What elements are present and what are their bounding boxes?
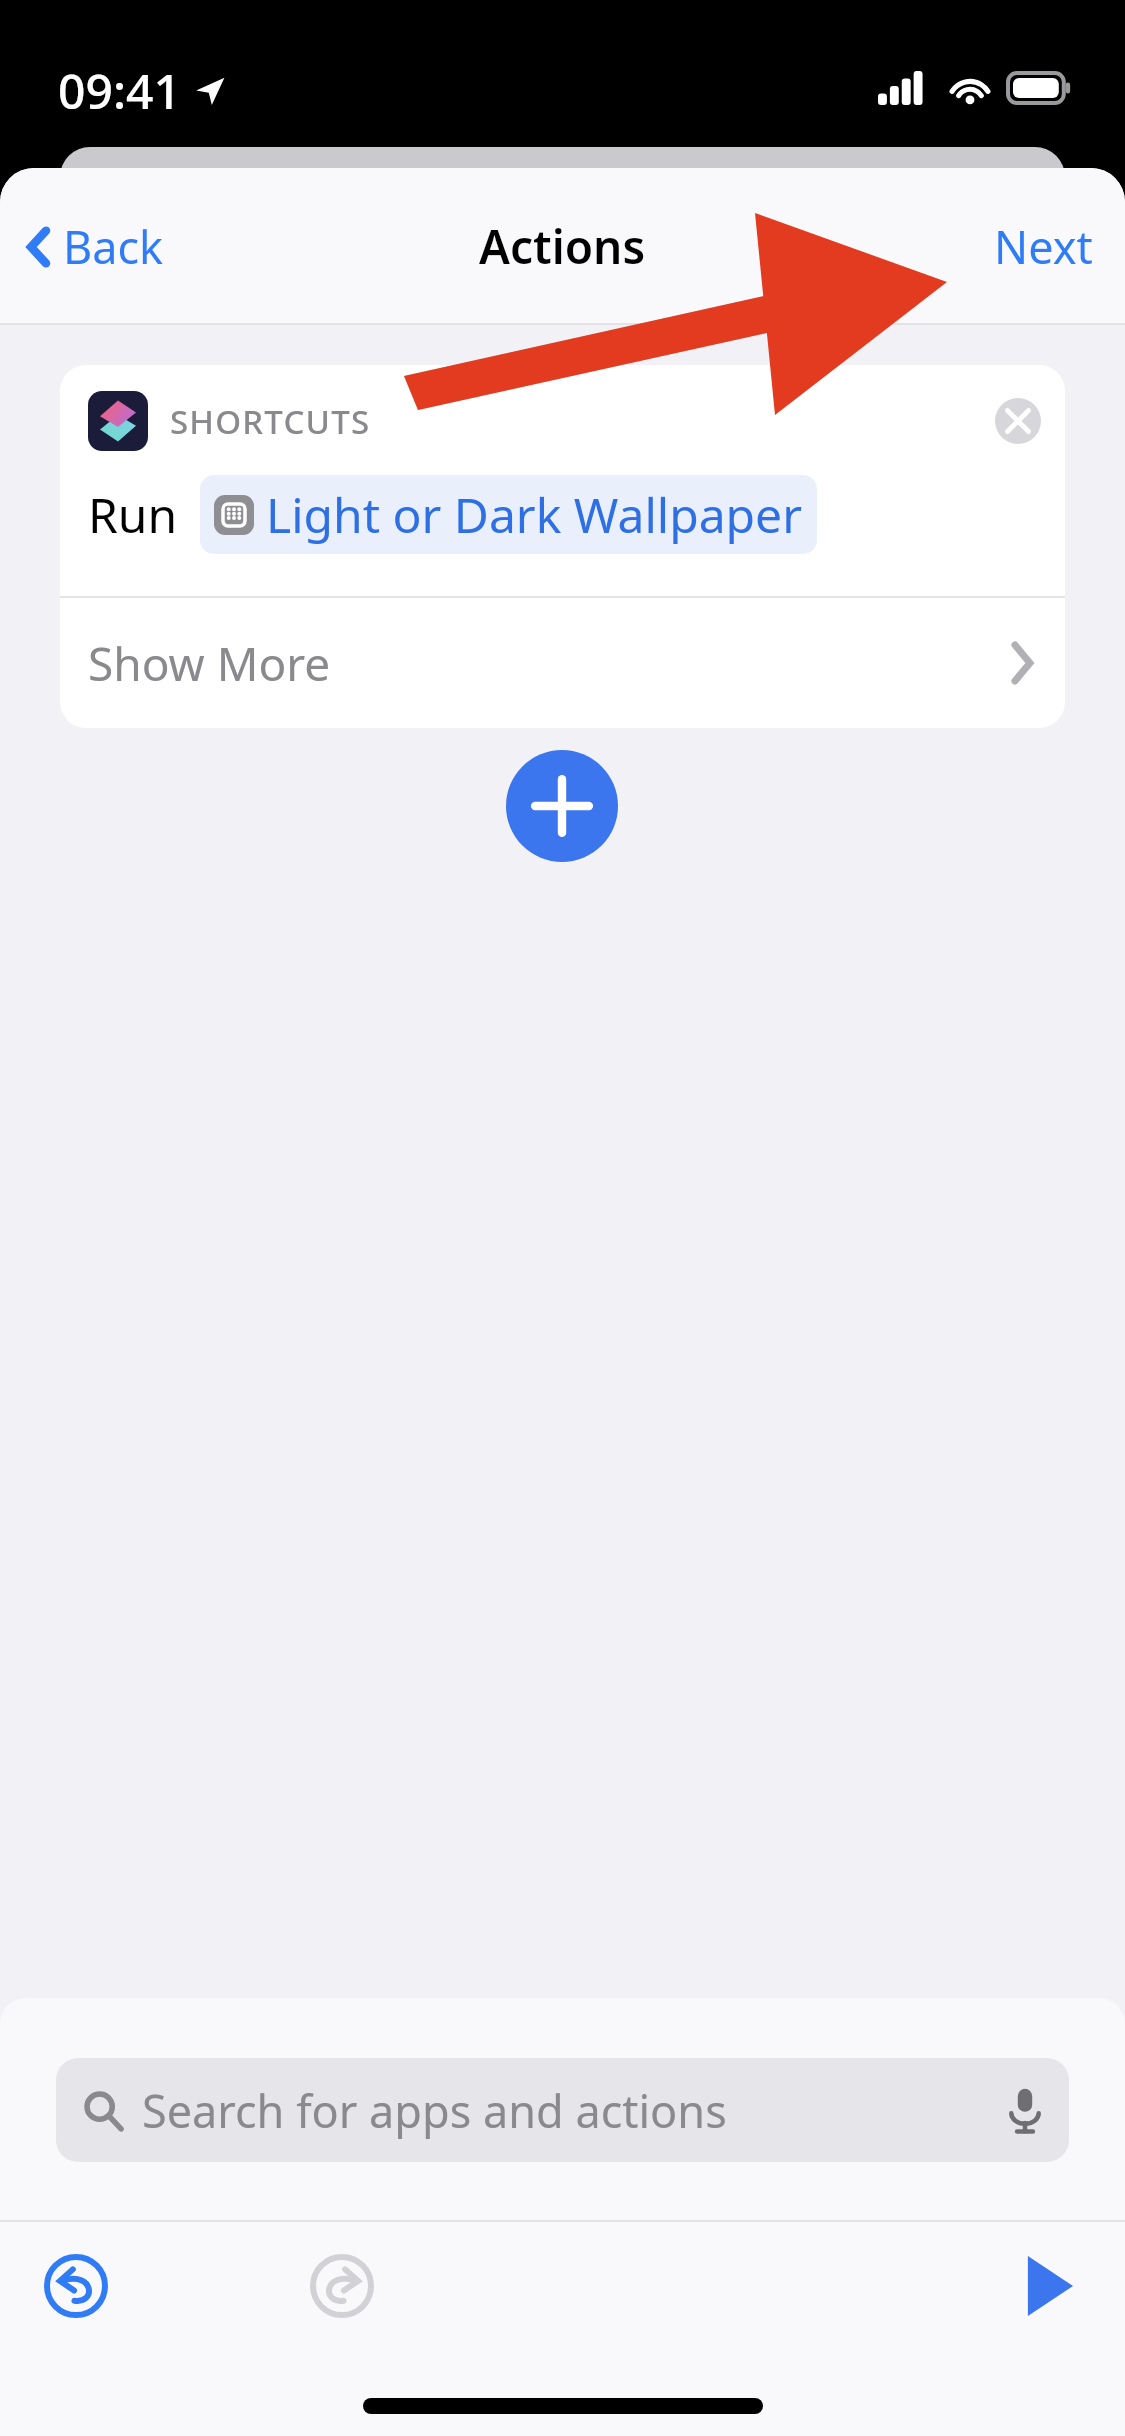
staticText: 09:41	[58, 58, 181, 123]
staticText: Show More	[88, 632, 331, 695]
button[interactable]: Remove action	[995, 398, 1041, 444]
staticText: Actions	[479, 215, 646, 278]
staticText: Next	[994, 216, 1093, 277]
staticText: Back	[63, 216, 164, 277]
button[interactable]: Next	[982, 202, 1105, 291]
staticText: Search for apps and actions	[142, 2080, 727, 2141]
staticText: SHORTCUTS	[170, 399, 371, 444]
button[interactable]: Redo	[296, 2240, 388, 2332]
staticText: Run	[88, 482, 178, 547]
button[interactable]: SHORTCUTS	[60, 365, 1065, 596]
button[interactable]: Show More	[60, 598, 1065, 728]
staticText: Light or Dark Wallpaper	[266, 482, 803, 547]
button[interactable]: Search for apps and actions	[56, 2058, 1069, 2162]
button[interactable]: Undo	[30, 2240, 122, 2332]
button[interactable]: Light or Dark Wallpaper	[200, 475, 817, 554]
button[interactable]: Back	[18, 202, 174, 291]
button[interactable]: Run shortcut	[1003, 2240, 1095, 2332]
button[interactable]: Add action	[506, 750, 618, 862]
